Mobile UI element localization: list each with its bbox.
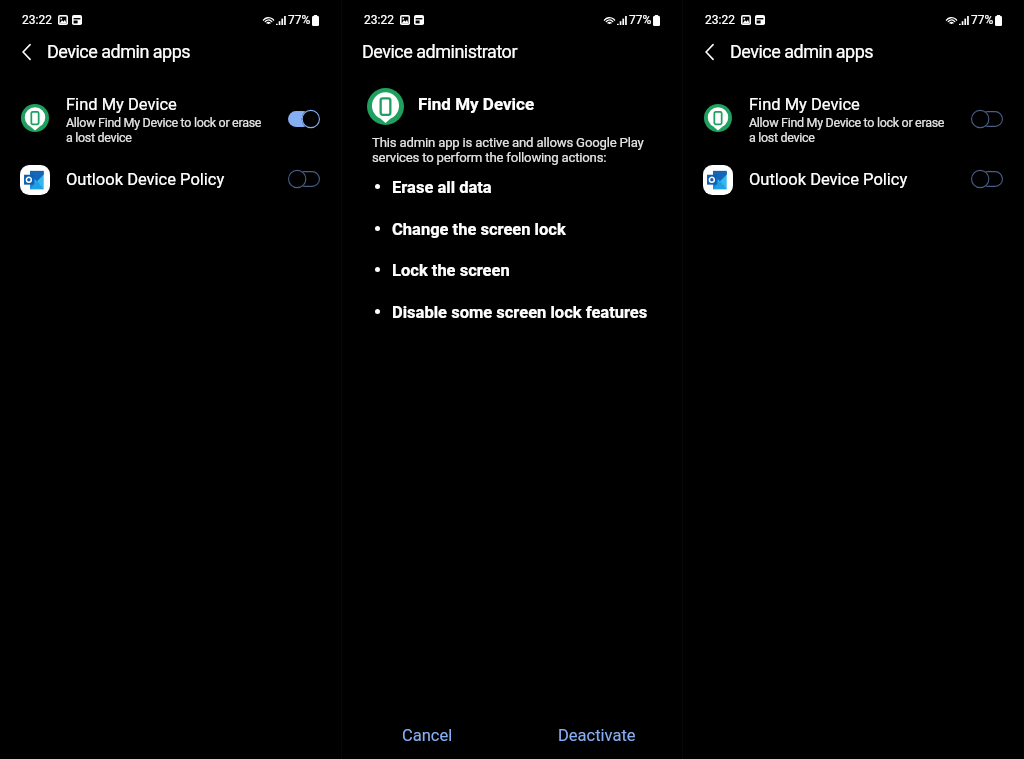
staticText: Outlook Device Policy: [66, 170, 225, 189]
staticText: 77%: [288, 13, 311, 27]
button[interactable]: Disabled: [971, 109, 1003, 129]
staticText: Erase all data: [392, 178, 492, 197]
staticText: Find My Device: [418, 94, 535, 114]
button[interactable]: Navigate up: [8, 36, 44, 68]
button[interactable]: Disabled: [288, 169, 320, 189]
button[interactable]: Find My Device: [342, 84, 682, 130]
button[interactable]: Disabled: [971, 169, 1003, 189]
staticText: Disable some screen lock features: [392, 303, 648, 322]
button[interactable]: Cancel: [342, 712, 512, 759]
staticText: Cancel: [402, 726, 453, 745]
staticText: Allow Find My Device to lock or erase a …: [66, 115, 267, 145]
staticText: 23:22: [705, 13, 735, 27]
staticText: Lock the screen: [392, 261, 510, 280]
staticText: Find My Device: [749, 95, 860, 114]
button[interactable]: Find My Device: [0, 92, 341, 148]
staticText: Device admin apps: [730, 41, 874, 62]
button[interactable]: Outlook Device Policy: [683, 158, 1024, 202]
staticText: 77%: [971, 13, 994, 27]
staticText: Find My Device: [66, 95, 177, 114]
staticText: This admin app is active and allows Goog…: [372, 135, 650, 165]
staticText: 23:22: [364, 13, 394, 27]
staticText: Change the screen lock: [392, 220, 566, 239]
staticText: Device administrator: [362, 41, 517, 62]
button[interactable]: Deactivate: [512, 712, 682, 759]
button[interactable]: Find My Device: [683, 92, 1024, 148]
staticText: Allow Find My Device to lock or erase a …: [749, 115, 950, 145]
staticText: Device admin apps: [47, 41, 191, 62]
staticText: Outlook Device Policy: [749, 170, 908, 189]
staticText: 77%: [629, 13, 652, 27]
staticText: 23:22: [22, 13, 52, 27]
button[interactable]: Navigate up: [691, 36, 727, 68]
staticText: Deactivate: [558, 726, 636, 745]
button[interactable]: Outlook Device Policy: [0, 158, 341, 202]
button[interactable]: Enabled: [288, 109, 320, 129]
